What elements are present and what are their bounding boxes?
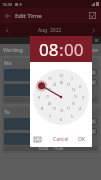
button[interactable]: 08 [39, 38, 59, 61]
staticText: 8 [41, 106, 43, 111]
button[interactable]: 13:00 [4, 97, 97, 102]
staticText: 11 [48, 76, 52, 81]
button[interactable]: Mo [2, 58, 99, 104]
button[interactable]: 00 [64, 38, 84, 61]
staticText: 20 [48, 102, 51, 106]
button[interactable]: Cancel [50, 134, 72, 145]
staticText: 13:00 [38, 97, 49, 102]
button[interactable]: Switch to keyboard input [33, 135, 42, 144]
staticText: 15 [74, 95, 77, 99]
button[interactable]: 12 [33, 69, 89, 125]
button[interactable]: Next month [89, 26, 98, 35]
staticText: 22 [48, 88, 51, 92]
staticText: 17 [67, 107, 70, 111]
staticText: 13:00 [38, 146, 49, 151]
staticText: 9 [38, 95, 40, 100]
staticText: 23 [53, 83, 56, 87]
button[interactable]: Tu [2, 107, 99, 153]
staticText: 2 [79, 84, 81, 89]
button[interactable] [4, 84, 41, 96]
staticText: 19 [53, 107, 56, 111]
staticText: 10 [40, 84, 44, 89]
staticText: 6 [60, 117, 62, 122]
staticText: 17:00 [53, 97, 64, 102]
staticText: 1 [71, 76, 73, 81]
button[interactable]: 13:00 [4, 146, 97, 151]
button[interactable] [4, 69, 41, 81]
staticText: 17:00 [53, 146, 64, 151]
staticText: 16:07 [84, 129, 95, 134]
staticText: 18 [60, 109, 63, 113]
staticText: Mo [4, 60, 12, 67]
staticText: 08 [39, 38, 59, 61]
button[interactable]: OK [75, 134, 89, 145]
staticText: Time [86, 47, 98, 54]
staticText: 09:00 [67, 70, 78, 75]
staticText: 21 [46, 95, 49, 99]
staticText: 00 [60, 81, 63, 85]
staticText: 13:00 [67, 80, 78, 85]
staticText: 5 [71, 114, 73, 119]
staticText: 4 [79, 106, 81, 111]
button[interactable]: 16:07 [82, 128, 97, 135]
staticText: Cancel [53, 136, 69, 143]
button[interactable]: Back [3, 11, 13, 21]
button[interactable] [4, 133, 41, 145]
staticText: 12:00 [84, 119, 95, 124]
staticText: 12:00 [84, 70, 95, 75]
button[interactable]: Previous month [3, 26, 12, 35]
staticText: 09:00 [67, 119, 78, 124]
staticText: 12 [59, 73, 63, 78]
button[interactable] [4, 118, 41, 130]
button[interactable]: 09:00 [65, 69, 80, 76]
button[interactable]: Save [87, 10, 98, 21]
staticText: Aug 2022 [38, 27, 62, 34]
staticText: Tu [4, 109, 10, 116]
staticText: OK [78, 136, 86, 143]
staticText: Working [3, 47, 23, 54]
staticText: 00 [64, 38, 84, 61]
staticText: 14 [72, 88, 75, 92]
button[interactable]: 13:00 [65, 79, 80, 86]
staticText: 3 [82, 95, 84, 100]
staticText: 17:00 [84, 80, 95, 85]
staticText: 7 [49, 114, 51, 119]
staticText: 13 [67, 83, 70, 87]
staticText: : [59, 38, 64, 61]
button[interactable]: 09:00 [65, 118, 80, 125]
button[interactable]: 12:00 [82, 69, 97, 76]
staticText: 18:08 [2, 2, 13, 7]
button[interactable]: 17:00 [82, 79, 97, 86]
staticText: 16 [72, 102, 75, 106]
staticText: Edit Time [15, 12, 42, 20]
button[interactable]: 12:00 [82, 118, 97, 125]
